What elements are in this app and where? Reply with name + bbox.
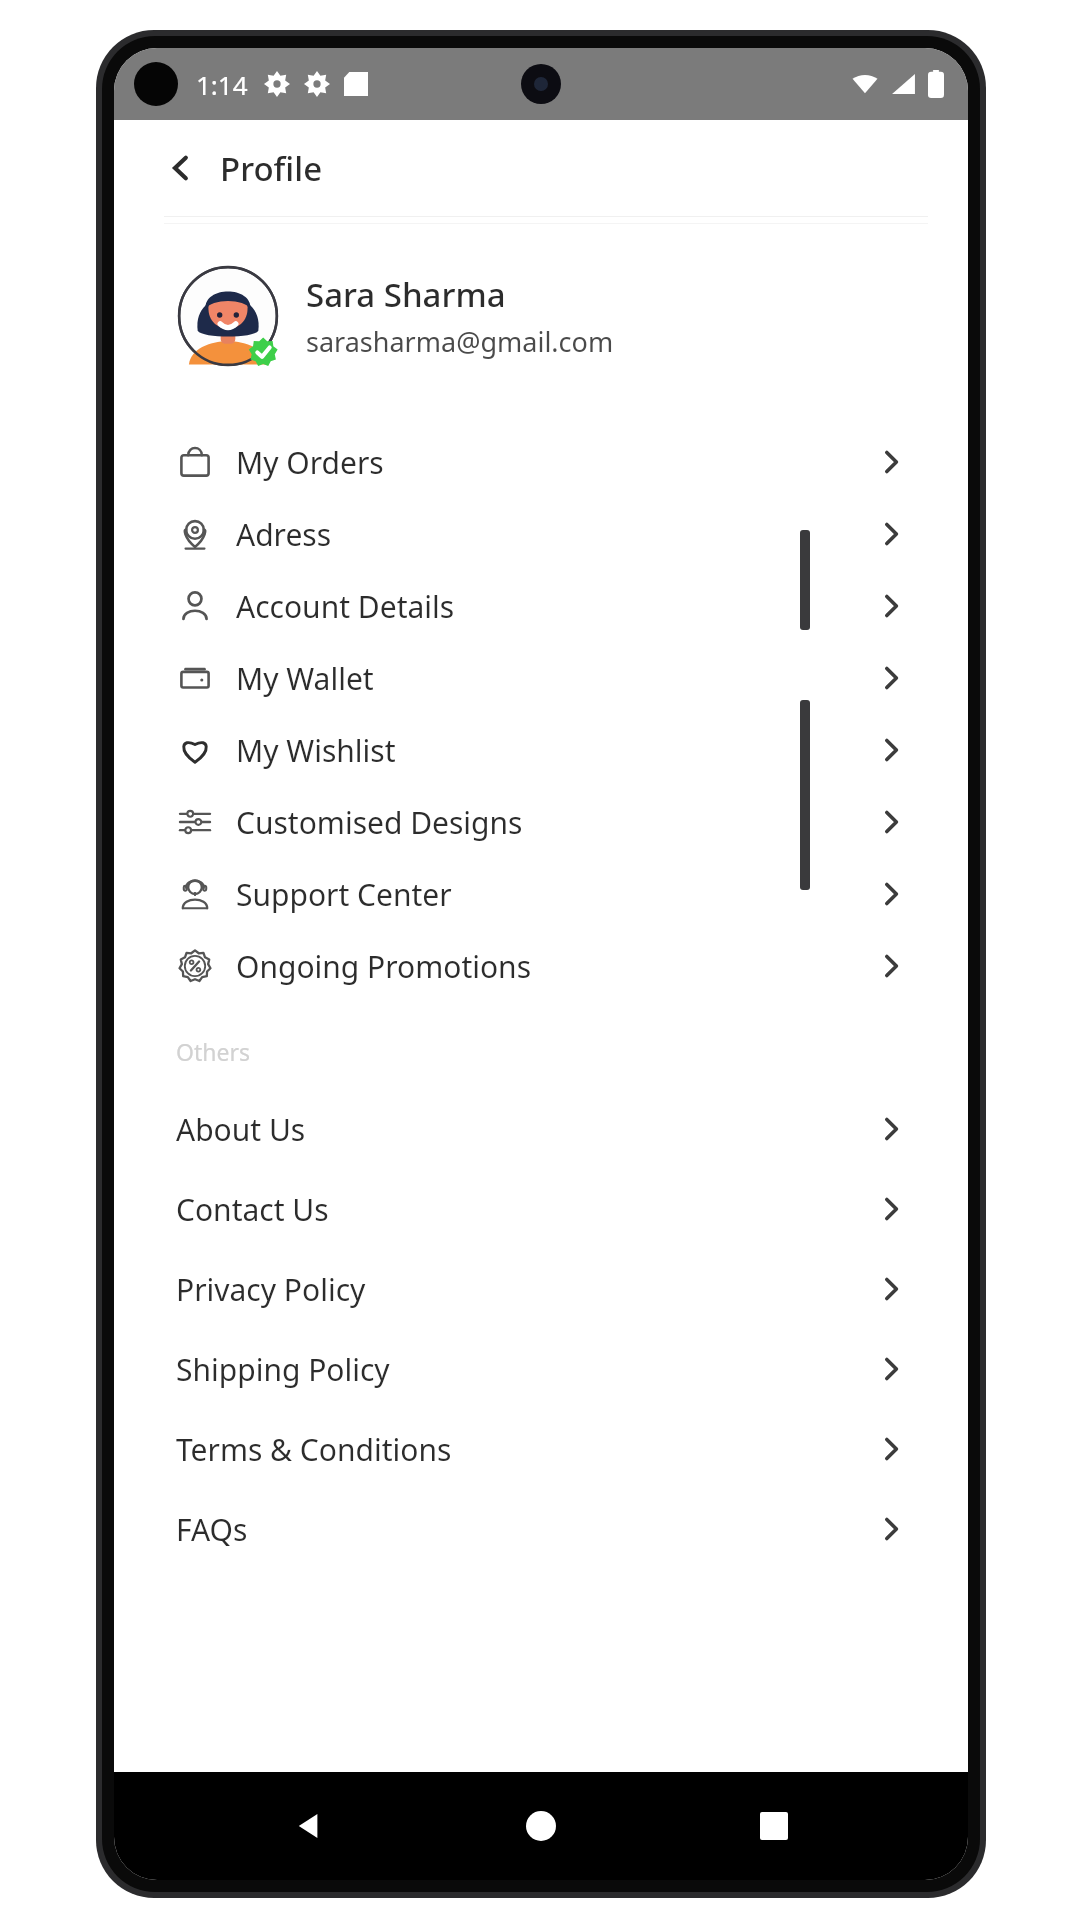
button[interactable]: Back [271, 1788, 347, 1864]
staticText: Profile [220, 146, 323, 191]
button[interactable]: Adress [114, 498, 968, 570]
button[interactable]: Shipping Policy [114, 1329, 968, 1409]
button[interactable]: Back [166, 150, 208, 186]
staticText: Ongoing Promotions [236, 946, 532, 987]
button[interactable]: FAQs [114, 1489, 968, 1569]
staticText: Privacy Policy [176, 1269, 366, 1310]
button[interactable]: Account Details [114, 570, 968, 642]
button[interactable]: About Us [114, 1089, 968, 1169]
button[interactable]: My Wallet [114, 642, 968, 714]
staticText: Account Details [236, 586, 455, 627]
staticText: Contact Us [176, 1189, 329, 1230]
button[interactable]: Privacy Policy [114, 1249, 968, 1329]
staticText: Customised Designs [236, 802, 523, 843]
staticText: Terms & Conditions [176, 1429, 452, 1470]
button[interactable]: Contact Us [114, 1169, 968, 1249]
button[interactable]: My Wishlist [114, 714, 968, 786]
staticText: Adress [236, 514, 332, 555]
staticText: About Us [176, 1109, 306, 1150]
button[interactable]: Recent apps [736, 1788, 812, 1864]
staticText: My Wallet [236, 658, 374, 699]
button[interactable]: Support Center [114, 858, 968, 930]
button[interactable]: My Orders [114, 426, 968, 498]
staticText: Support Center [236, 874, 452, 915]
staticText: My Orders [236, 442, 384, 483]
button[interactable]: Home [503, 1788, 579, 1864]
button[interactable]: Customised Designs [114, 786, 968, 858]
staticText: Sara Sharma [306, 272, 506, 317]
button[interactable]: Ongoing Promotions [114, 930, 968, 1002]
staticText: 1:14 [196, 67, 248, 102]
staticText: Shipping Policy [176, 1349, 390, 1390]
button[interactable]: Terms & Conditions [114, 1409, 968, 1489]
staticText: My Wishlist [236, 730, 396, 771]
button[interactable]: Sara Sharma [176, 264, 968, 368]
staticText: Others [176, 1036, 250, 1067]
staticText: FAQs [176, 1509, 248, 1550]
staticText: sarasharma@gmail.com [306, 323, 614, 360]
